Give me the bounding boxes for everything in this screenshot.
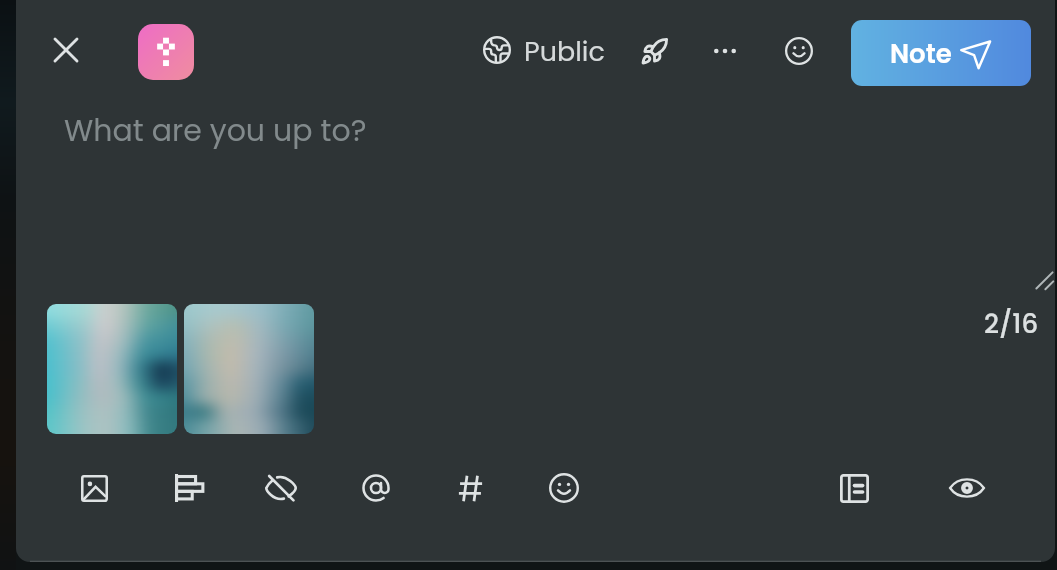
button[interactable]: Attached image 2 [184, 304, 314, 434]
button[interactable]: Public [478, 26, 608, 74]
button[interactable]: Hashtag [443, 461, 498, 516]
button[interactable]: Add image [68, 462, 121, 515]
staticText: What are you up to? [64, 110, 367, 152]
button[interactable]: Emoji [775, 27, 823, 75]
button[interactable]: Mention [348, 460, 404, 516]
button[interactable]: Sensitive content [252, 461, 310, 515]
button[interactable]: Note [851, 20, 1031, 86]
staticText: Public [524, 33, 605, 71]
staticText: 2/16 [984, 306, 1039, 342]
button[interactable]: Poll [162, 461, 216, 515]
button[interactable]: Preview [936, 463, 998, 513]
button[interactable]: More options [704, 33, 746, 69]
staticText: Note [890, 36, 952, 72]
button[interactable]: Boost [630, 27, 679, 75]
button[interactable]: Emoji [536, 460, 592, 516]
button[interactable]: Drafts [827, 461, 882, 516]
button[interactable]: Account [138, 24, 194, 80]
button[interactable]: Close [44, 28, 88, 72]
button[interactable]: Attached image 1 [47, 304, 177, 434]
